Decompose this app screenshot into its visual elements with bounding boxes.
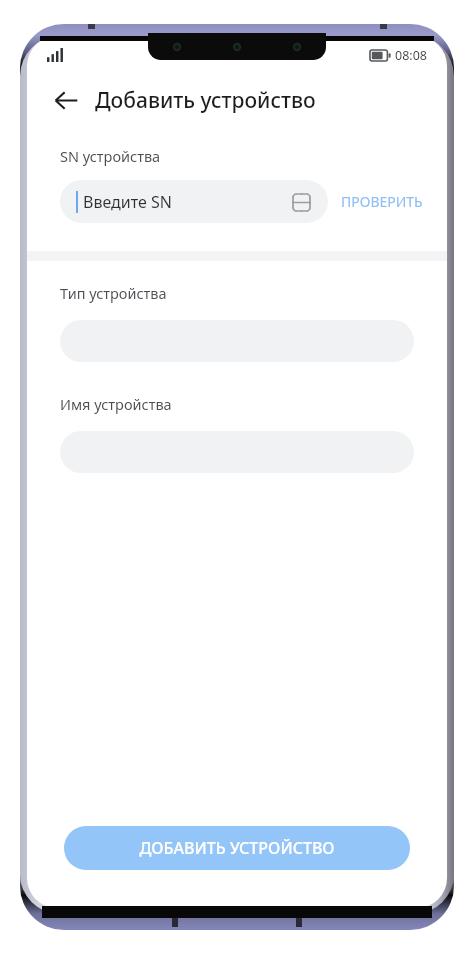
- staticText: ПРОВЕРИТЬ: [341, 192, 423, 211]
- button[interactable]: ДОБАВИТЬ УСТРОЙСТВО: [64, 826, 410, 870]
- staticText: 08:08: [395, 47, 427, 64]
- staticText: Введите SN: [83, 191, 172, 213]
- button[interactable]: Сканировать: [289, 190, 313, 214]
- staticText: Имя устройства: [60, 394, 172, 414]
- button[interactable]: Введите SN: [60, 180, 328, 223]
- staticText: ДОБАВИТЬ УСТРОЙСТВО: [139, 837, 335, 859]
- button[interactable]: Назад: [49, 83, 83, 117]
- staticText: Тип устройства: [60, 283, 167, 303]
- staticText: Добавить устройство: [95, 86, 316, 115]
- button[interactable]: ПРОВЕРИТЬ: [339, 186, 425, 217]
- staticText: SN устройства: [60, 146, 161, 166]
